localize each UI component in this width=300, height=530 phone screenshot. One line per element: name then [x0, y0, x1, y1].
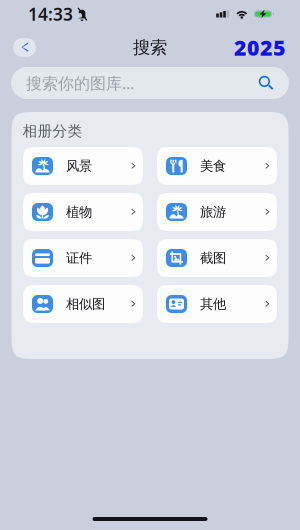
staticText: 相似图 [66, 296, 105, 312]
button[interactable]: Back [11, 36, 38, 59]
button[interactable]: 美食 [157, 147, 277, 185]
staticText: 旅游 [200, 204, 226, 220]
staticText: 搜索你的图库... [26, 72, 134, 94]
button[interactable]: 截图 [157, 239, 277, 277]
button[interactable]: 证件 [23, 239, 143, 277]
staticText: 其他 [200, 296, 226, 312]
staticText: 2025 [236, 33, 284, 62]
staticText: 相册分类 [22, 122, 82, 140]
button[interactable]: 植物 [23, 193, 143, 231]
button[interactable]: 旅游 [157, 193, 277, 231]
button[interactable]: 搜索你的图库... [11, 67, 289, 99]
staticText: 植物 [66, 204, 92, 220]
button[interactable]: 其他 [157, 285, 277, 323]
staticText: 截图 [200, 250, 226, 266]
button[interactable]: 风景 [23, 147, 143, 185]
staticText: 搜索 [133, 37, 167, 58]
staticText: 证件 [66, 250, 92, 266]
staticText: 风景 [66, 158, 92, 174]
staticText: 美食 [200, 158, 226, 174]
button[interactable]: 相似图 [23, 285, 143, 323]
staticText: 14:33 [28, 2, 73, 25]
staticText: 2025 [234, 33, 286, 62]
